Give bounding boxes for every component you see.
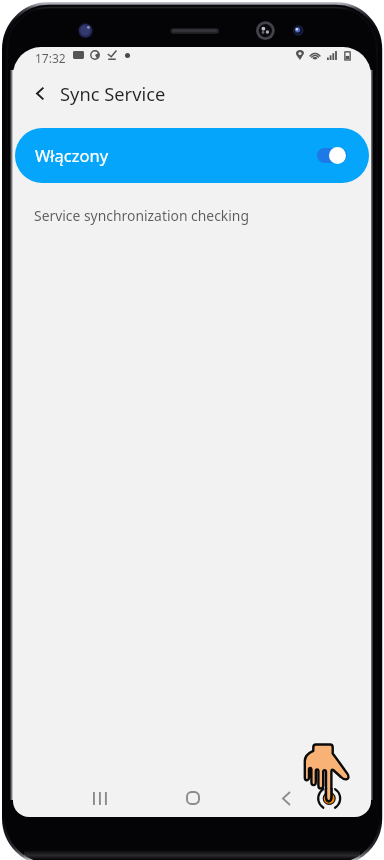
staticText: Sync Service — [60, 81, 166, 106]
button[interactable]: Włączony — [15, 128, 369, 183]
button[interactable]: Recent apps — [80, 779, 118, 817]
staticText: 17:32 — [35, 50, 66, 66]
button[interactable]: Home — [174, 779, 212, 817]
button[interactable]: Back — [267, 779, 305, 817]
staticText: Włączony — [35, 144, 109, 166]
button[interactable]: Back — [18, 71, 62, 115]
staticText: Service synchronization checking — [34, 206, 249, 225]
